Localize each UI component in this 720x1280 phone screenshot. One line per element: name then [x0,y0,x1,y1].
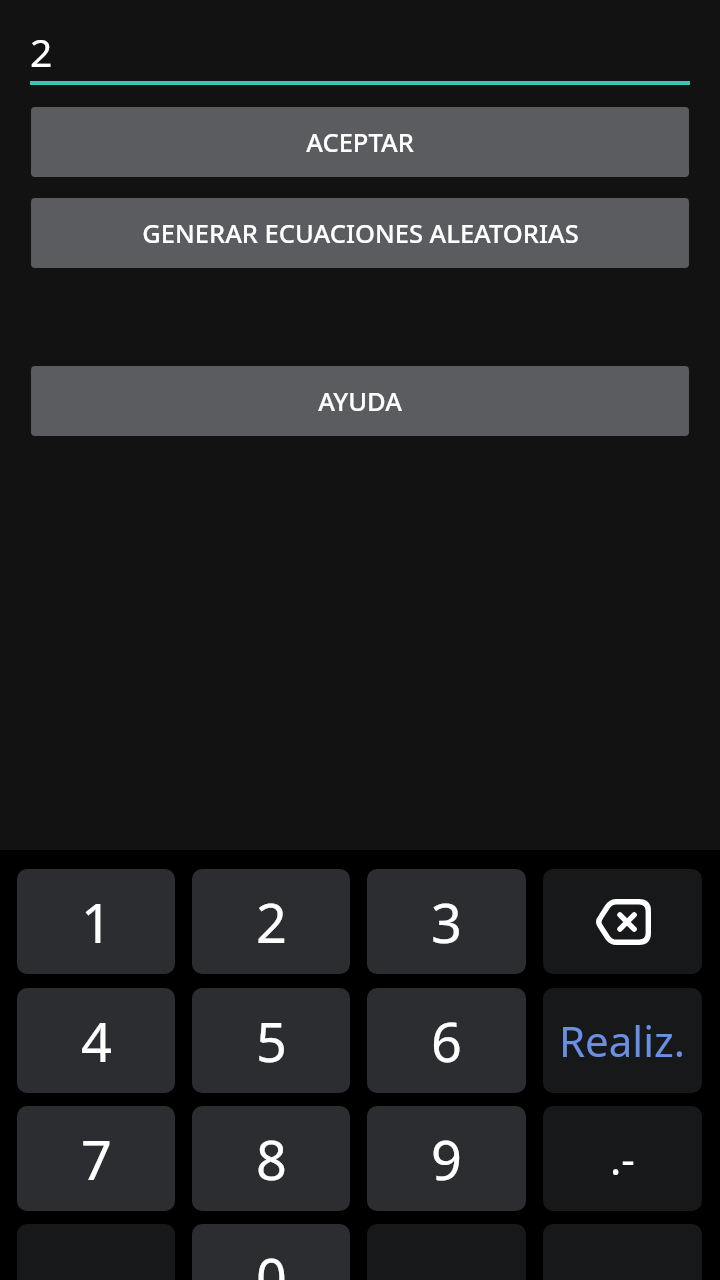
staticText: 4 [81,1004,112,1078]
staticText: 2 [256,885,287,959]
button[interactable]: Backspace [543,869,702,974]
button[interactable]: 8 [192,1106,350,1211]
button[interactable]: 7 [17,1106,175,1211]
button[interactable]: 2 [30,25,690,85]
button[interactable]: 4 [17,988,175,1093]
staticText: AYUDA [318,384,402,419]
staticText: 2 [30,25,53,78]
button[interactable]: Dot or minus [543,1106,702,1211]
staticText: .- [610,1130,635,1187]
button[interactable]: 6 [367,988,526,1093]
button[interactable]: GENERAR ECUACIONES ALEATORIAS [31,198,689,268]
staticText: Realiz. [559,1012,686,1069]
staticText: 9 [431,1122,462,1196]
staticText: 5 [256,1004,287,1078]
staticText: 1 [81,885,112,959]
staticText: 0 [256,1240,287,1280]
button[interactable]: ACEPTAR [31,107,689,177]
button[interactable]: Realiz. [543,988,702,1093]
staticText: 6 [431,1004,462,1078]
button[interactable]: 9 [367,1106,526,1211]
button[interactable]: 3 [367,869,526,974]
staticText: 8 [256,1122,287,1196]
staticText: 3 [431,885,462,959]
staticText: 7 [81,1122,112,1196]
button[interactable]: AYUDA [31,366,689,436]
button[interactable]: 0 [192,1224,350,1280]
staticText: ACEPTAR [306,125,414,160]
button[interactable]: 2 [192,869,350,974]
button[interactable]: 5 [192,988,350,1093]
staticText: GENERAR ECUACIONES ALEATORIAS [142,216,579,251]
button[interactable]: 1 [17,869,175,974]
